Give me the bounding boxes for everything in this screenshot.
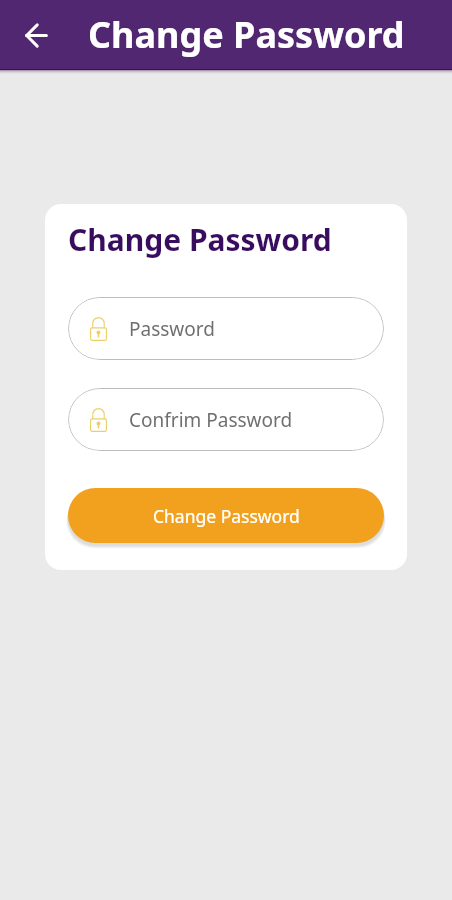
- button[interactable]: Back: [12, 11, 60, 59]
- button[interactable]: Confrim Password: [68, 388, 384, 451]
- staticText: Change Password: [88, 10, 405, 59]
- button[interactable]: Password: [68, 297, 384, 360]
- staticText: Change Password: [68, 219, 332, 260]
- staticText: Confrim Password: [129, 407, 293, 433]
- staticText: Change Password: [153, 504, 300, 528]
- staticText: Password: [129, 316, 215, 342]
- button[interactable]: Change Password: [68, 488, 384, 543]
